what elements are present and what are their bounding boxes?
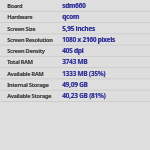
staticText: Available Storage [7, 92, 52, 100]
staticText: Hardware [7, 13, 33, 21]
staticText: 405 dpi [62, 46, 84, 55]
staticText: 1080 x 2160 pixels [62, 35, 115, 44]
staticText: 5,95 inches [62, 24, 95, 33]
button[interactable]: Internal Storage [0, 79, 150, 90]
staticText: 3743 MB [62, 57, 88, 66]
staticText: Available RAM [7, 70, 44, 78]
staticText: Screen Resolution [7, 36, 53, 44]
button[interactable]: Board [0, 0, 150, 11]
staticText: Screen Size [7, 25, 36, 33]
staticText: Internal Storage [7, 81, 49, 89]
staticText: Total RAM [7, 58, 33, 66]
staticText: 5,95 inches [62, 24, 95, 33]
staticText: Total RAM [7, 58, 33, 66]
button[interactable]: Screen Size [0, 23, 150, 34]
staticText: 1080 x 2160 pixels [62, 35, 115, 44]
staticText: Hardware [7, 13, 33, 21]
staticText: Screen Size [7, 25, 36, 33]
staticText: 1333 MB (35%) [62, 69, 106, 78]
staticText: Board [7, 2, 23, 10]
staticText: Board [7, 2, 23, 10]
staticText: sdm660 [62, 1, 86, 10]
staticText: Internal Storage [7, 81, 49, 89]
staticText: Screen Resolution [7, 36, 53, 44]
staticText: 49,09 GB [62, 80, 88, 89]
staticText: Available Storage [7, 92, 52, 100]
button[interactable]: Available RAM [0, 68, 150, 79]
staticText: sdm660 [62, 1, 86, 10]
button[interactable]: Available Storage [0, 90, 150, 101]
staticText: 405 dpi [62, 46, 84, 55]
button[interactable]: Screen Resolution [0, 34, 150, 45]
staticText: 1333 MB (35%) [62, 69, 106, 78]
button[interactable]: Total RAM [0, 56, 150, 67]
staticText: qcom [62, 12, 79, 21]
staticText: 3743 MB [62, 57, 88, 66]
button[interactable]: Hardware [0, 11, 150, 22]
staticText: Screen Density [7, 47, 45, 55]
staticText: 49,09 GB [62, 80, 88, 89]
staticText: Screen Density [7, 47, 45, 55]
staticText: qcom [62, 12, 79, 21]
staticText: 40,23 GB (81%) [62, 91, 106, 100]
staticText: Available RAM [7, 70, 44, 78]
button[interactable]: Screen Density [0, 45, 150, 56]
staticText: 40,23 GB (81%) [62, 91, 106, 100]
